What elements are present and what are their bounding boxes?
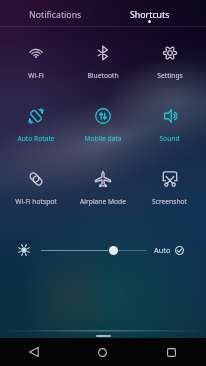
button[interactable]: Wi-Fi	[3, 45, 69, 61]
button[interactable]: Notifications	[8, 0, 103, 27]
staticText: Sound	[159, 134, 180, 143]
button[interactable]: Screenshot	[136, 171, 203, 187]
button[interactable]: Wi-Fi hotspot	[3, 171, 69, 187]
button[interactable]: Mobile data	[69, 108, 136, 124]
button[interactable]: Home	[68, 338, 137, 366]
button[interactable]: Back	[0, 338, 68, 366]
staticText: Auto	[154, 245, 171, 255]
button[interactable]: Brightness slider	[109, 246, 118, 255]
button[interactable]: Settings	[136, 45, 203, 61]
button[interactable]: Brightness	[18, 244, 30, 256]
staticText: Bluetooth	[87, 71, 119, 80]
button[interactable]: Sound	[136, 108, 203, 124]
staticText: Shortcuts	[130, 9, 170, 21]
staticText: Settings	[157, 71, 183, 80]
button[interactable]: Auto brightness	[175, 246, 184, 255]
staticText: Wi-Fi	[28, 71, 44, 80]
button[interactable]: Airplane Mode	[69, 171, 136, 187]
staticText: Airplane Mode	[80, 197, 126, 206]
staticText: Notifications	[29, 9, 82, 21]
button[interactable]: Auto Rotate	[3, 108, 69, 124]
button[interactable]: Shortcuts	[102, 0, 197, 27]
staticText: Auto Rotate	[17, 134, 55, 143]
staticText: Mobile data	[84, 134, 122, 143]
staticText: Screenshot	[152, 197, 187, 206]
button[interactable]: Recent apps	[137, 338, 206, 366]
staticText: Wi-Fi hotspot	[15, 197, 57, 206]
button[interactable]: Bluetooth	[69, 45, 136, 61]
